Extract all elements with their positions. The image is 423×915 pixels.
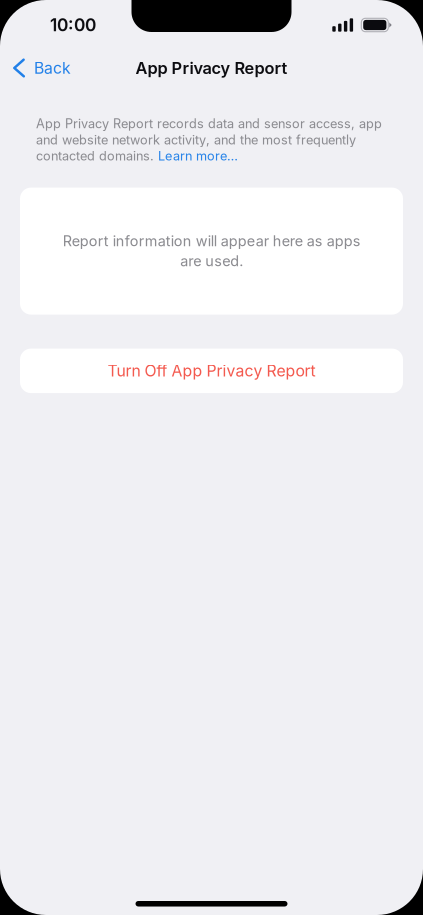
button[interactable]: Turn Off App Privacy Report <box>0 349 423 393</box>
staticText: Report information will appear here as a… <box>62 232 360 270</box>
staticText: App Privacy Report records data and sens… <box>36 116 382 131</box>
button[interactable]: Back <box>0 44 81 88</box>
staticText: Back <box>34 58 71 77</box>
staticText: 10:00 <box>50 14 96 35</box>
staticText: and website network activity, and the mo… <box>36 132 356 147</box>
staticText: contacted domains. <box>36 148 158 164</box>
button[interactable]: Learn more… <box>158 148 238 164</box>
staticText: Learn more… <box>158 148 238 164</box>
staticText: Turn Off App Privacy Report <box>107 361 315 380</box>
staticText: App Privacy Report <box>135 58 287 78</box>
